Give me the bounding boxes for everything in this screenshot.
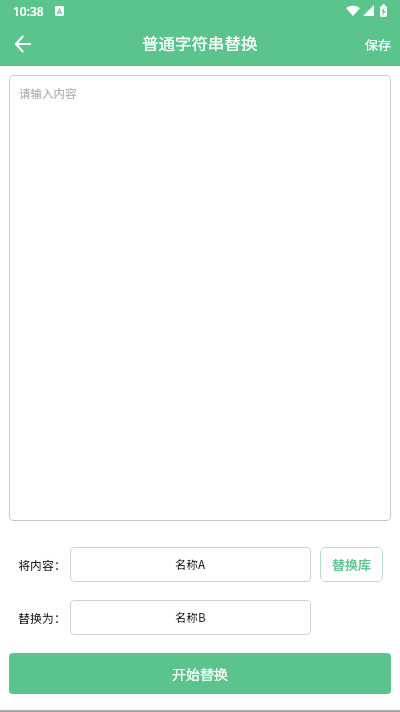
staticText: 保存: [365, 35, 392, 54]
staticText: 名称A: [175, 556, 206, 573]
button[interactable]: 请输入内容: [9, 75, 391, 521]
staticText: 替换为：: [18, 609, 67, 626]
button[interactable]: 名称A: [70, 547, 311, 582]
staticText: 替换库: [332, 555, 372, 574]
button[interactable]: 名称B: [70, 600, 311, 635]
staticText: 名称B: [175, 609, 206, 626]
staticText: 10:38: [13, 3, 44, 19]
staticText: 请输入内容: [19, 85, 77, 102]
button[interactable]: 替换库: [320, 547, 383, 582]
button[interactable]: 保存: [349, 22, 400, 66]
button[interactable]: Back: [0, 22, 46, 66]
staticText: 开始替换: [172, 664, 228, 684]
staticText: 将内容：: [18, 556, 67, 573]
button[interactable]: 开始替换: [9, 653, 391, 694]
staticText: 普通字符串替换: [142, 31, 258, 55]
